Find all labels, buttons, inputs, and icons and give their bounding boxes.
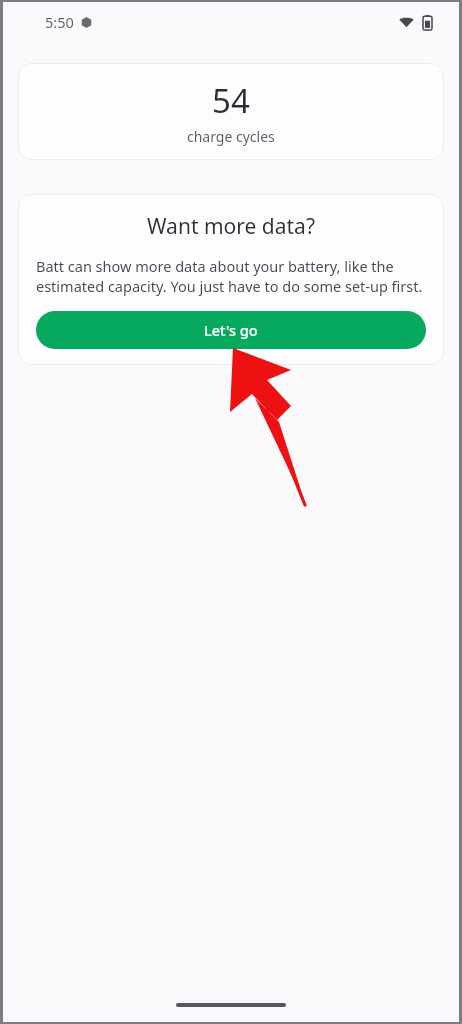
staticText: Batt can show more data about your batte… (36, 256, 426, 297)
other: Home gesture bar (176, 1003, 286, 1007)
staticText: charge cycles (187, 127, 275, 146)
button[interactable]: Let's go (36, 311, 426, 349)
staticText: Let's go (204, 320, 258, 340)
staticText: 5:50 (45, 12, 74, 32)
staticText: Want more data? (36, 212, 426, 241)
staticText: 54 (212, 78, 250, 123)
button[interactable]: 54 (18, 63, 444, 160)
